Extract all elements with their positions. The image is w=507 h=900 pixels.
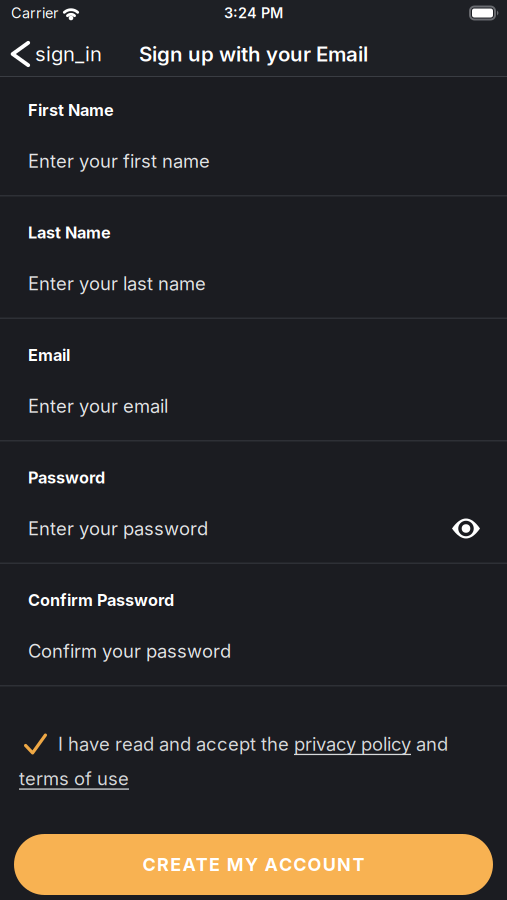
staticText: CREATE MY ACCOUNT <box>143 854 364 875</box>
button[interactable]: Confirm your password <box>0 612 507 664</box>
staticText: Enter your first name <box>28 150 210 172</box>
staticText: Enter your last name <box>28 272 206 295</box>
staticText: privacy policy <box>294 733 411 755</box>
button[interactable]: Back to sign in <box>10 41 102 67</box>
button[interactable]: Enter your first name <box>0 122 507 174</box>
staticText: Carrier <box>11 4 58 22</box>
button[interactable]: Enter your last name <box>0 244 507 296</box>
button[interactable]: Show password <box>452 518 480 538</box>
button[interactable]: privacy policy <box>294 733 411 755</box>
button[interactable]: Enter your password <box>0 489 507 541</box>
staticText: Confirm Password <box>28 590 174 610</box>
button[interactable]: Accept terms <box>24 732 47 755</box>
button[interactable]: terms of use <box>19 767 129 790</box>
staticText: 3:24 PM <box>224 4 283 22</box>
staticText: sign_in <box>35 42 102 66</box>
button[interactable]: CREATE MY ACCOUNT <box>14 834 493 895</box>
staticText: Last Name <box>28 223 111 242</box>
staticText: terms of use <box>19 767 129 790</box>
staticText: Email <box>28 345 70 365</box>
staticText: Enter your password <box>28 517 208 540</box>
staticText: Enter your email <box>28 395 168 417</box>
staticText: Sign up with your Email <box>139 42 368 66</box>
button[interactable]: Enter your email <box>0 367 507 419</box>
staticText: First Name <box>28 100 114 120</box>
staticText: I have read and accept the <box>58 733 294 755</box>
staticText: and <box>411 733 448 755</box>
staticText: Confirm your password <box>28 640 231 662</box>
staticText: Password <box>28 468 105 487</box>
